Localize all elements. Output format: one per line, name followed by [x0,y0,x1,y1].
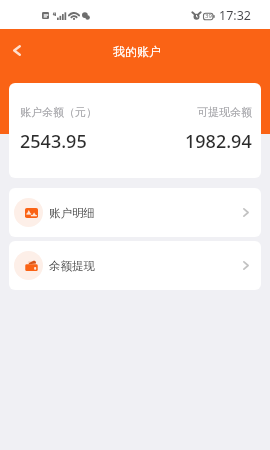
button[interactable]: 账户余额（元） [9,83,261,178]
staticText: 账户余额（元） [20,105,97,119]
staticText: 我的账户 [113,44,161,59]
staticText: 2543.95 [20,129,87,154]
button[interactable]: Back [0,29,34,73]
staticText: 1982.94 [185,129,252,154]
staticText: 账户明细 [49,206,95,220]
staticText: 39 [205,12,212,20]
staticText: 可提现余额 [197,105,252,119]
staticText: 余额提现 [49,259,95,273]
staticText: 17:32 [219,7,251,24]
button[interactable]: 余额提现 [9,241,261,290]
button[interactable]: 账户明细 [9,188,261,237]
